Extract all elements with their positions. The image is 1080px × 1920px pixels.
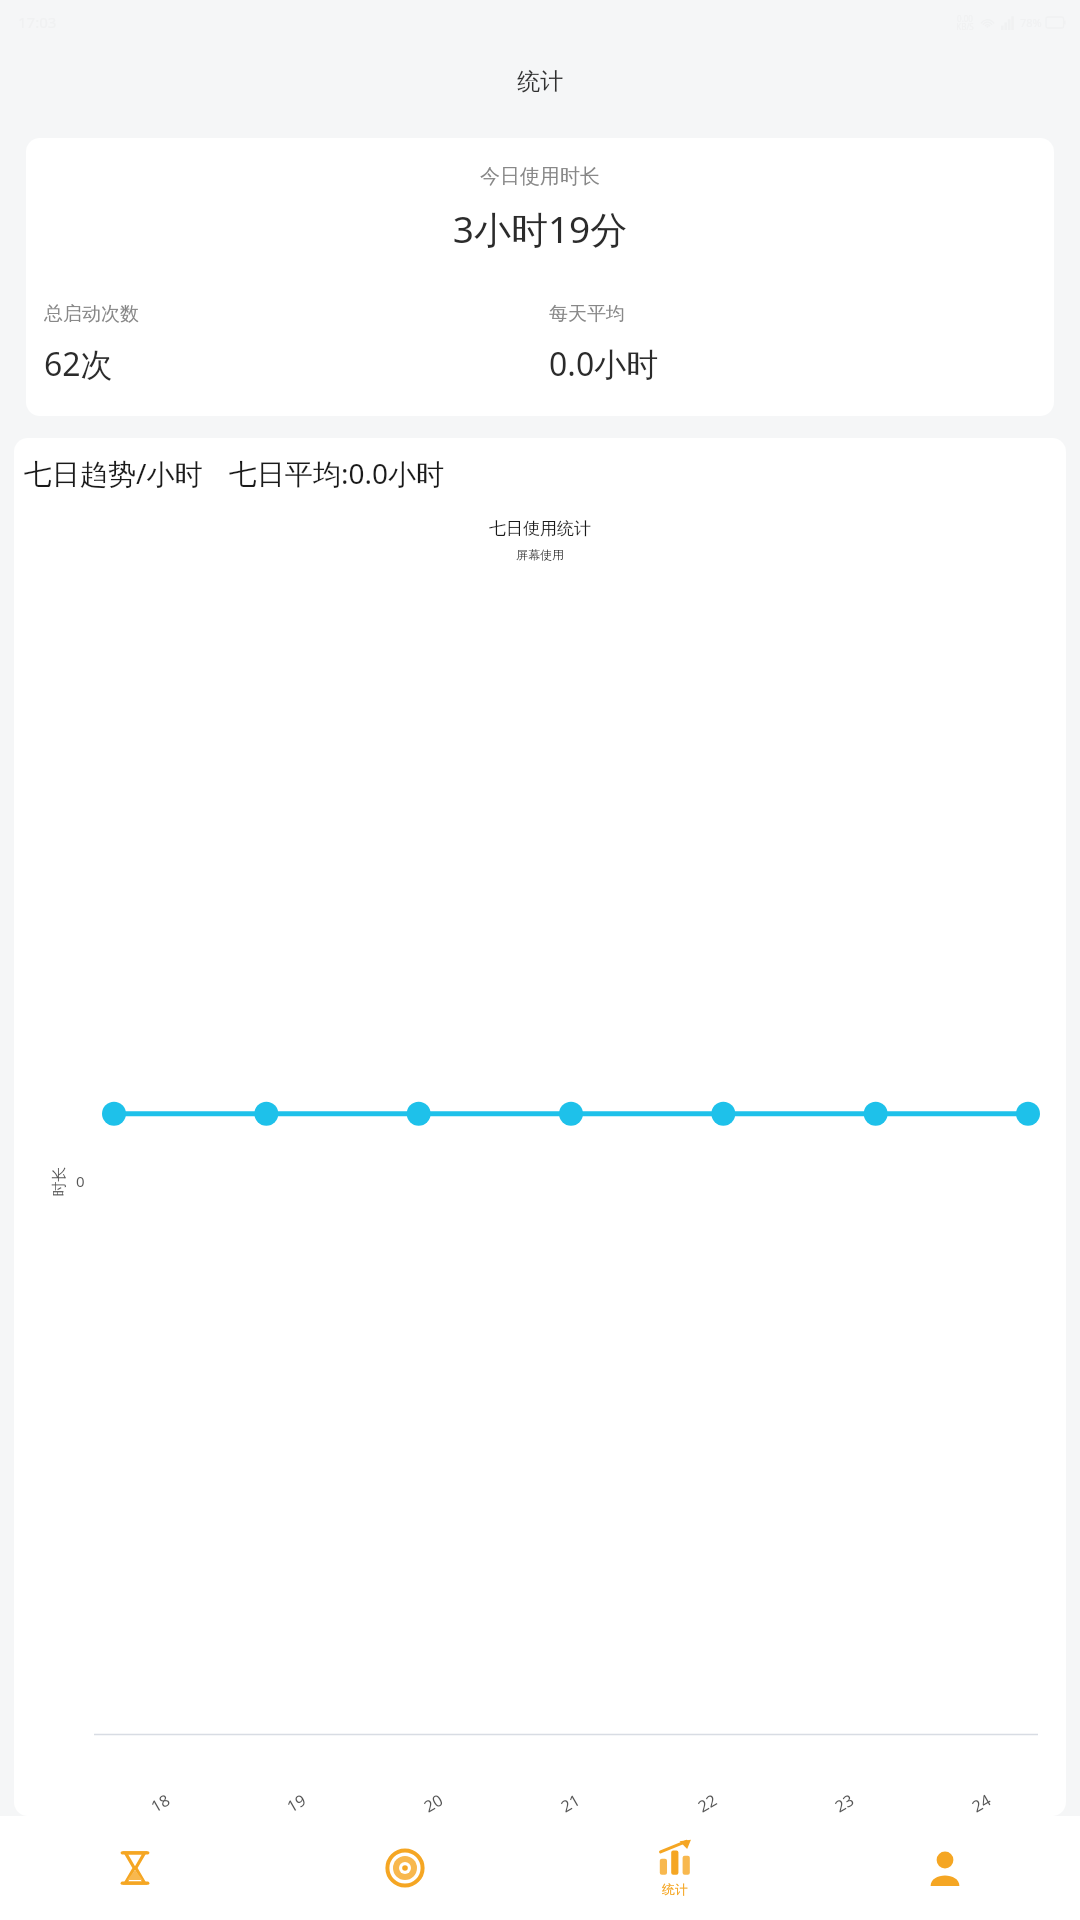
staticText: 七日平均:0.0小时	[229, 454, 445, 492]
staticText: 19	[283, 1789, 310, 1816]
staticText: 统计	[517, 67, 563, 96]
staticText: 24	[968, 1789, 995, 1816]
staticText: 统计	[662, 1881, 688, 1897]
button[interactable]: Timer	[0, 1816, 270, 1920]
staticText: 屏幕使用	[14, 547, 1066, 562]
staticText: 21	[557, 1789, 584, 1816]
staticText: 18	[147, 1789, 174, 1816]
staticText: 0.0小时	[549, 342, 659, 386]
staticText: 0	[76, 1171, 85, 1191]
staticText: 23	[831, 1789, 858, 1816]
staticText: 3小时19分	[26, 203, 1054, 254]
staticText: 22	[694, 1789, 721, 1816]
button[interactable]: Focus	[270, 1816, 540, 1920]
staticText: 今日使用时长	[26, 164, 1054, 189]
button[interactable]: Profile	[810, 1816, 1080, 1920]
button[interactable]: 统计	[540, 1816, 810, 1920]
staticText: 七日趋势/小时	[24, 454, 203, 492]
staticText: 七日使用统计	[14, 518, 1066, 539]
staticText: 时长	[49, 1166, 68, 1196]
staticText: 62次	[44, 342, 113, 386]
staticText: 每天平均	[549, 302, 625, 326]
button[interactable]: 今日使用时长	[26, 138, 1054, 416]
staticText: 20	[420, 1789, 447, 1816]
staticText: 总启动次数	[44, 302, 139, 326]
